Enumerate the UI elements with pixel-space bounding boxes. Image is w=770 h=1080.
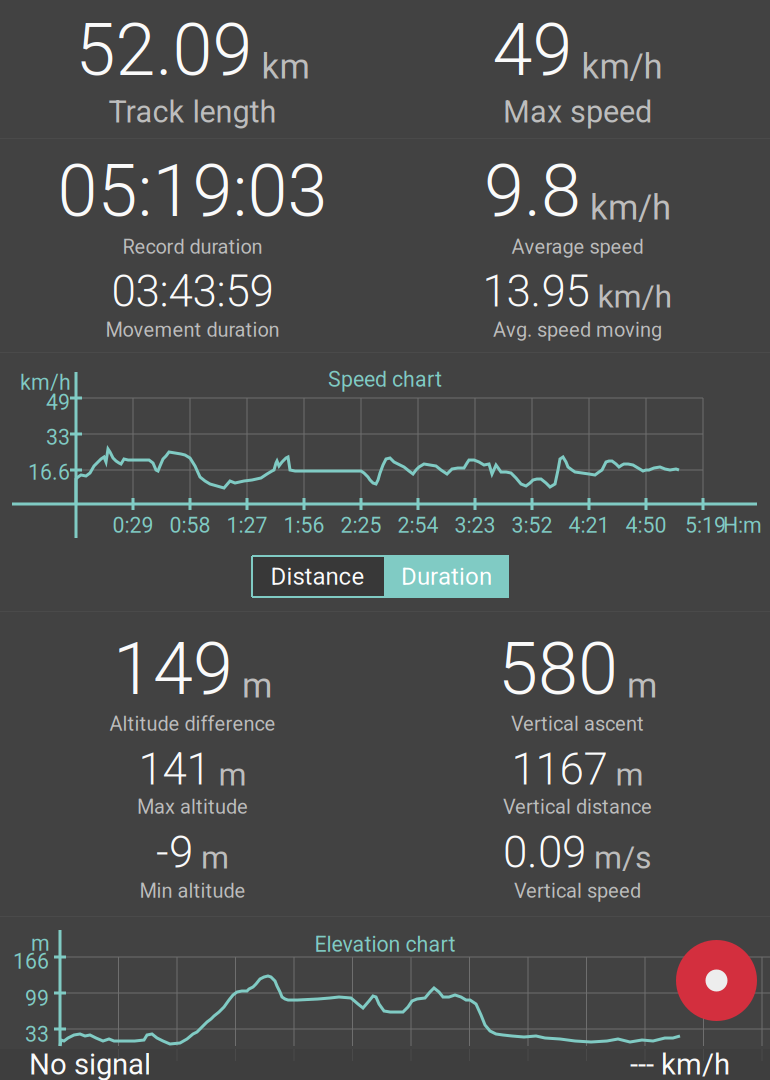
staticText: Duration (401, 562, 492, 590)
staticText: m (210, 756, 246, 793)
staticText: m (618, 665, 657, 706)
button[interactable]: Duration (384, 555, 509, 598)
staticText: 580 (498, 627, 618, 712)
staticText: 16.6 (28, 460, 70, 485)
staticText: 0:29 (112, 513, 153, 538)
staticText: --- km/h (630, 1047, 730, 1080)
staticText: km/h (581, 187, 671, 228)
staticText: 13.95 (482, 266, 589, 317)
staticText: 4:21 (568, 513, 609, 538)
staticText: Min altitude (139, 879, 245, 902)
staticText: m (193, 839, 229, 876)
staticText: Vertical speed (514, 879, 641, 902)
staticText: km/h (20, 370, 71, 395)
staticText: H:m (723, 513, 762, 538)
staticText: 0.09 (503, 827, 586, 878)
staticText: km/h (589, 278, 672, 315)
staticText: Speed chart (328, 367, 442, 392)
button[interactable]: Distance (251, 555, 384, 598)
staticText: Elevation chart (314, 932, 455, 957)
staticText: Distance (270, 562, 364, 590)
staticText: -9 (156, 827, 193, 878)
staticText: Track length (108, 94, 276, 130)
staticText: 4:50 (625, 513, 666, 538)
staticText: m (31, 931, 50, 956)
staticText: 49 (46, 390, 70, 415)
staticText: 3:23 (454, 513, 495, 538)
staticText: 99 (25, 986, 49, 1011)
staticText: 0:58 (169, 513, 210, 538)
staticText: km (252, 46, 309, 87)
staticText: 52.09 (75, 8, 252, 93)
staticText: 3:52 (511, 513, 552, 538)
staticText: Vertical ascent (511, 712, 644, 735)
staticText: 9.8 (484, 149, 581, 234)
staticText: 5:19 (685, 513, 726, 538)
staticText: No signal (29, 1047, 151, 1080)
staticText: 1:56 (283, 513, 324, 538)
staticText: Movement duration (105, 318, 279, 341)
staticText: Max altitude (137, 795, 248, 818)
staticText: Avg. speed moving (493, 318, 662, 341)
staticText: 149 (113, 627, 233, 712)
staticText: m/s (586, 839, 652, 876)
staticText: 33 (25, 1022, 49, 1047)
staticText: km/h (572, 46, 662, 87)
staticText: 1167 (511, 744, 607, 795)
staticText: m (233, 665, 272, 706)
staticText: 166 (13, 949, 49, 974)
staticText: 05:19:03 (57, 149, 327, 234)
staticText: 2:25 (340, 513, 381, 538)
staticText: 49 (492, 8, 572, 93)
staticText: Average speed (511, 235, 643, 258)
staticText: Vertical distance (503, 795, 652, 818)
staticText: Record duration (122, 235, 262, 258)
staticText: 141 (138, 744, 210, 795)
staticText: Altitude difference (109, 712, 275, 735)
staticText: m (607, 756, 643, 793)
staticText: 1:27 (226, 513, 267, 538)
staticText: 33 (46, 425, 70, 450)
button[interactable]: Start recording (676, 940, 757, 1021)
staticText: 2:54 (397, 513, 438, 538)
staticText: Max speed (503, 94, 652, 130)
staticText: 03:43:59 (111, 266, 273, 317)
